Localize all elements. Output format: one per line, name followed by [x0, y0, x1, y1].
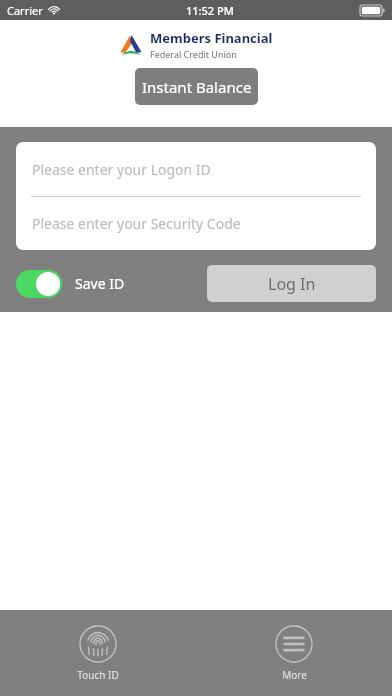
staticText: Carrier — [7, 3, 43, 18]
staticText: Log In — [268, 273, 316, 295]
staticText: Federal Credit Union — [150, 48, 237, 60]
staticText: Please enter your Security Code — [32, 214, 241, 233]
staticText: Save ID — [75, 274, 125, 293]
button[interactable]: Touch ID — [65, 621, 131, 686]
staticText: 11:52 PM — [186, 3, 234, 18]
button[interactable]: More — [263, 621, 325, 686]
button[interactable]: Save ID toggle — [16, 270, 62, 298]
button[interactable]: Instant Balance — [135, 68, 258, 105]
staticText: Members Financial — [150, 29, 273, 47]
staticText: Touch ID — [77, 668, 119, 682]
button[interactable]: Please enter your Security Code — [16, 197, 376, 250]
staticText: More — [282, 668, 307, 682]
staticText: Instant Balance — [142, 77, 252, 97]
button[interactable]: Please enter your Logon ID — [16, 142, 376, 196]
staticText: Please enter your Logon ID — [32, 160, 211, 179]
button[interactable]: Log In — [207, 265, 376, 302]
